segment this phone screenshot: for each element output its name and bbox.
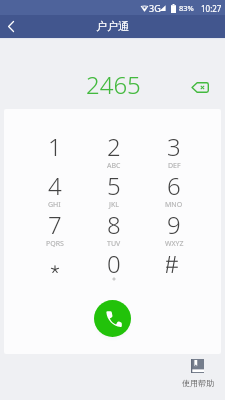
staticText: 5 [107, 169, 121, 202]
button[interactable]: Back [0, 15, 22, 38]
button[interactable]: 3 [144, 132, 204, 171]
staticText: JKL [109, 200, 119, 210]
staticText: MNO [165, 200, 183, 210]
staticText: 2 [107, 130, 121, 163]
button[interactable]: Call [94, 300, 131, 337]
staticText: 3 [167, 130, 181, 163]
button[interactable]: * [25, 249, 84, 288]
staticText: 2465 [86, 68, 141, 101]
button[interactable]: 2 [84, 132, 144, 171]
staticText: TUV [107, 239, 121, 249]
button[interactable]: 9 [144, 210, 204, 249]
button[interactable]: # [144, 249, 204, 288]
button[interactable]: 1 [25, 132, 84, 171]
staticText: 4 [48, 169, 62, 202]
staticText: 10:27 [201, 3, 222, 14]
staticText: 9 [167, 208, 181, 241]
button[interactable]: 0 [84, 249, 144, 288]
button[interactable]: 8 [84, 210, 144, 249]
staticText: WXYZ [165, 239, 184, 249]
staticText: 83% [179, 3, 194, 13]
button[interactable]: 7 [25, 210, 84, 249]
staticText: 0 [107, 247, 121, 280]
staticText: 户户通 [96, 19, 129, 33]
staticText: PQRS [46, 239, 64, 249]
button[interactable]: 6 [144, 171, 204, 210]
staticText: 3G [149, 2, 161, 14]
button[interactable]: Backspace [187, 76, 212, 98]
button[interactable]: 使用帮助 [181, 359, 214, 388]
staticText: 使用帮助 [182, 378, 214, 388]
staticText: 6 [167, 169, 181, 202]
staticText: 8 [107, 208, 121, 241]
staticText: 7 [48, 208, 62, 241]
staticText: 1 [48, 130, 62, 163]
staticText: DEF [168, 161, 181, 171]
staticText: GHI [48, 200, 61, 210]
button[interactable]: 5 [84, 171, 144, 210]
button[interactable]: 4 [25, 171, 84, 210]
staticText: ABC [107, 161, 121, 171]
